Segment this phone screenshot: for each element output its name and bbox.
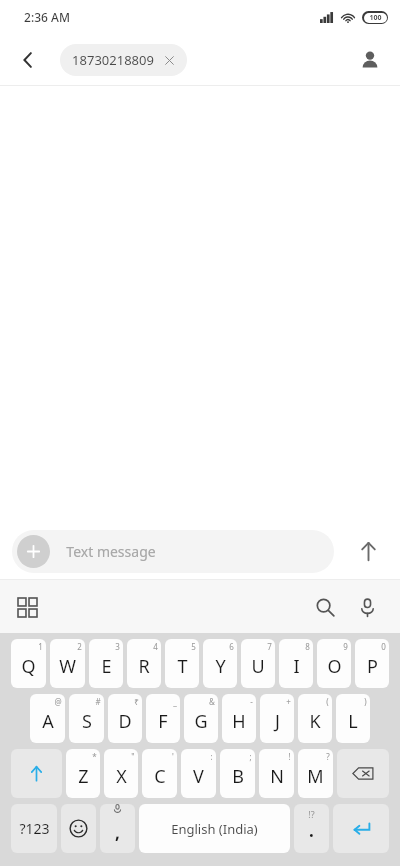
staticText: I	[293, 654, 300, 679]
button[interactable]: :	[181, 749, 216, 798]
staticText: "	[131, 751, 135, 762]
button[interactable]: ₹	[108, 694, 142, 743]
staticText: W	[59, 654, 76, 679]
staticText: !	[288, 751, 291, 762]
staticText: V	[193, 764, 204, 789]
staticText: 100	[369, 13, 382, 23]
button[interactable]: Add attachment	[12, 530, 334, 573]
staticText: ?123	[19, 819, 50, 838]
staticText: 18730218809	[72, 51, 154, 69]
button[interactable]: Voice input	[348, 588, 386, 626]
staticText: ,	[115, 821, 120, 844]
staticText: Text message	[66, 542, 156, 561]
button[interactable]: 18730218809	[60, 44, 187, 76]
button[interactable]: Contacts	[352, 42, 388, 78]
button[interactable]: Add attachment	[17, 535, 50, 568]
button[interactable]: 7	[241, 639, 275, 688]
staticText: .	[309, 819, 314, 842]
staticText: Q	[21, 654, 36, 679]
staticText: U	[251, 654, 265, 679]
button[interactable]: Shift	[11, 749, 62, 798]
staticText: 6	[229, 641, 234, 652]
staticText: !?	[308, 808, 315, 820]
staticText: L	[348, 709, 358, 734]
staticText: A	[42, 709, 54, 734]
staticText: #	[95, 696, 101, 707]
staticText: 2:36 AM	[24, 9, 70, 25]
staticText: ?	[326, 751, 330, 762]
staticText: +	[286, 696, 291, 707]
staticText: M	[307, 764, 324, 789]
staticText: D	[118, 709, 132, 734]
button[interactable]: Backspace	[337, 749, 389, 798]
button[interactable]: 0	[355, 639, 389, 688]
staticText: X	[116, 764, 127, 789]
staticText: 4	[153, 641, 158, 652]
staticText: O	[327, 654, 342, 679]
staticText: -	[250, 696, 253, 707]
staticText: 0	[381, 641, 386, 652]
button[interactable]: English (India)	[139, 804, 290, 853]
staticText: 2	[77, 641, 82, 652]
staticText: ₹	[134, 696, 139, 707]
button[interactable]: Period	[294, 804, 329, 853]
staticText: S	[82, 709, 92, 734]
staticText: 8	[305, 641, 310, 652]
button[interactable]: 4	[127, 639, 161, 688]
staticText: K	[309, 709, 321, 734]
staticText: 7	[267, 641, 272, 652]
button[interactable]: 3	[89, 639, 123, 688]
staticText: '	[172, 751, 174, 762]
button[interactable]: Search	[306, 588, 344, 626]
staticText: @	[54, 696, 62, 707]
button[interactable]: ?	[298, 749, 333, 798]
button[interactable]: 9	[317, 639, 351, 688]
staticText: J	[275, 709, 280, 734]
staticText: R	[138, 654, 150, 679]
button[interactable]: #	[69, 694, 104, 743]
button[interactable]: -	[222, 694, 256, 743]
button[interactable]: +	[260, 694, 294, 743]
button[interactable]: Send	[348, 531, 388, 571]
button[interactable]: _	[146, 694, 180, 743]
staticText: G	[194, 709, 208, 734]
button[interactable]: 5	[165, 639, 199, 688]
button[interactable]: *	[66, 749, 100, 798]
staticText: 3	[115, 641, 120, 652]
staticText: (	[326, 696, 329, 707]
staticText: &	[209, 696, 215, 707]
staticText: ;	[249, 751, 252, 762]
staticText: T	[177, 654, 188, 679]
button[interactable]: Back	[10, 42, 46, 78]
button[interactable]: )	[336, 694, 370, 743]
button[interactable]: ;	[220, 749, 255, 798]
other: Remove recipient	[164, 55, 175, 66]
button[interactable]: Enter	[333, 804, 389, 853]
button[interactable]: Keyboard menu	[8, 588, 46, 626]
button[interactable]: 8	[279, 639, 313, 688]
button[interactable]: Comma	[100, 804, 135, 853]
staticText: *	[92, 751, 97, 762]
button[interactable]: !	[259, 749, 294, 798]
button[interactable]: "	[104, 749, 138, 798]
staticText: Y	[215, 654, 226, 679]
staticText: 5	[191, 641, 196, 652]
staticText: English (India)	[171, 820, 258, 838]
button[interactable]: 2	[50, 639, 85, 688]
button[interactable]: &	[184, 694, 218, 743]
staticText: :	[210, 751, 213, 762]
button[interactable]: (	[298, 694, 332, 743]
staticText: N	[270, 764, 284, 789]
staticText: C	[154, 764, 166, 789]
staticText: 1	[38, 641, 43, 652]
staticText: E	[101, 654, 112, 679]
button[interactable]: 6	[203, 639, 237, 688]
button[interactable]: '	[142, 749, 177, 798]
staticText: Z	[78, 764, 89, 789]
button[interactable]: 1	[11, 639, 46, 688]
button[interactable]: Emoji	[61, 804, 96, 853]
staticText: _	[173, 696, 177, 707]
staticText: P	[367, 654, 378, 679]
button[interactable]: Symbols	[11, 804, 57, 853]
button[interactable]: @	[30, 694, 65, 743]
